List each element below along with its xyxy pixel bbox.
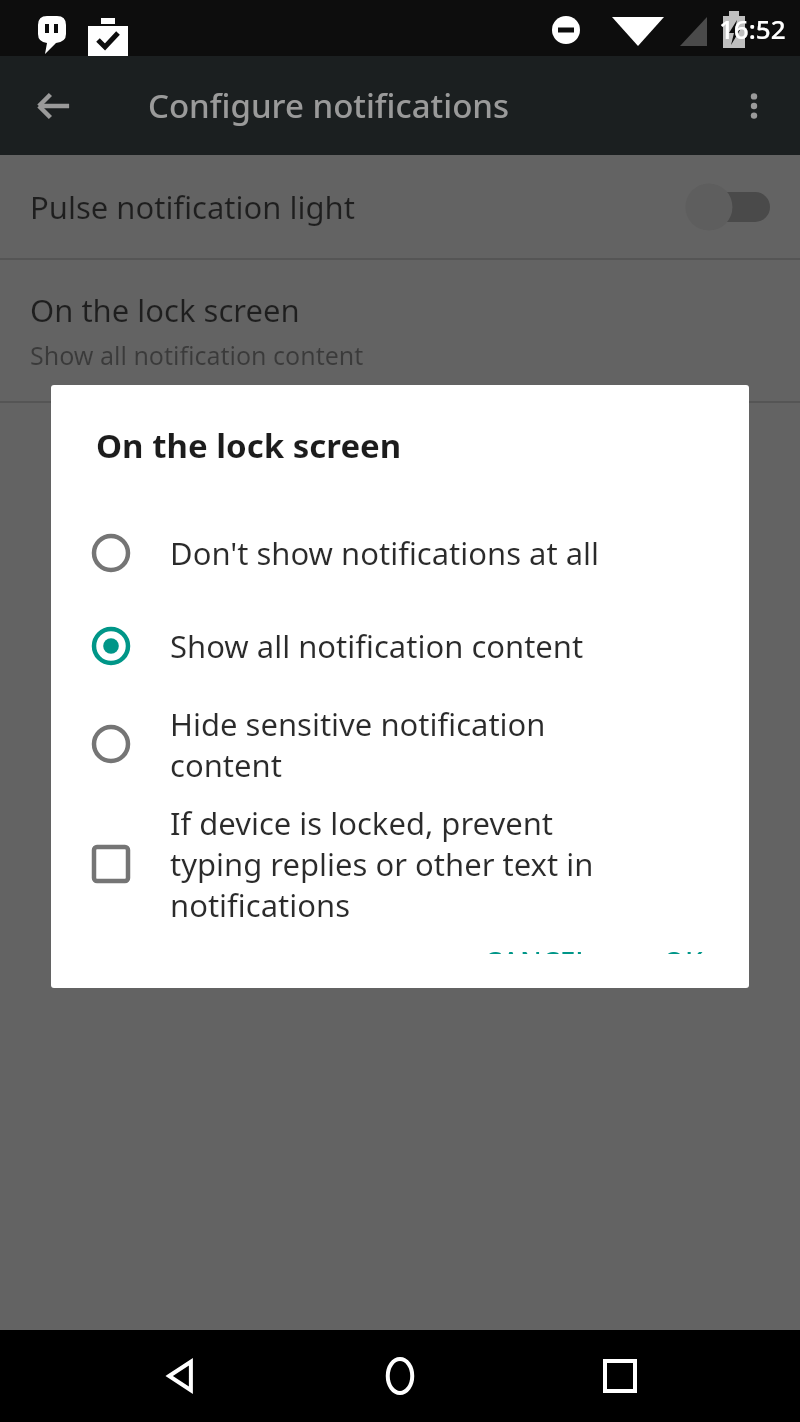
staticText: 16:52 <box>719 11 786 46</box>
staticText: On the lock screen <box>30 289 300 331</box>
button[interactable]: OK <box>647 931 719 966</box>
button[interactable]: On the lock screen <box>0 260 800 401</box>
button[interactable]: If device is locked, prevent typing repl… <box>51 796 749 931</box>
staticText: Show all notification content <box>30 338 364 372</box>
staticText: Pulse notification light <box>30 186 684 228</box>
button[interactable]: Show all notification content <box>51 599 749 692</box>
button[interactable]: Recents <box>580 1336 660 1416</box>
staticText: If device is locked, prevent typing repl… <box>170 802 719 926</box>
button[interactable]: Back <box>26 78 82 134</box>
button[interactable]: More options <box>726 78 782 134</box>
button[interactable]: CANCEL <box>468 931 607 966</box>
staticText: On the lock screen <box>96 423 402 468</box>
staticText: Show all notification content <box>170 625 719 667</box>
button[interactable]: Back <box>140 1336 220 1416</box>
staticText: CANCEL <box>484 943 591 954</box>
staticText: Hide sensitive notification content <box>170 703 719 786</box>
staticText: Configure notifications <box>148 83 510 128</box>
button[interactable]: Don't show notifications at all <box>51 506 749 599</box>
button[interactable]: Home <box>360 1336 440 1416</box>
staticText: OK <box>663 943 703 954</box>
button[interactable]: Hide sensitive notification content <box>51 692 749 796</box>
button[interactable]: Pulse notification light <box>0 155 800 258</box>
staticText: Don't show notifications at all <box>170 532 719 574</box>
